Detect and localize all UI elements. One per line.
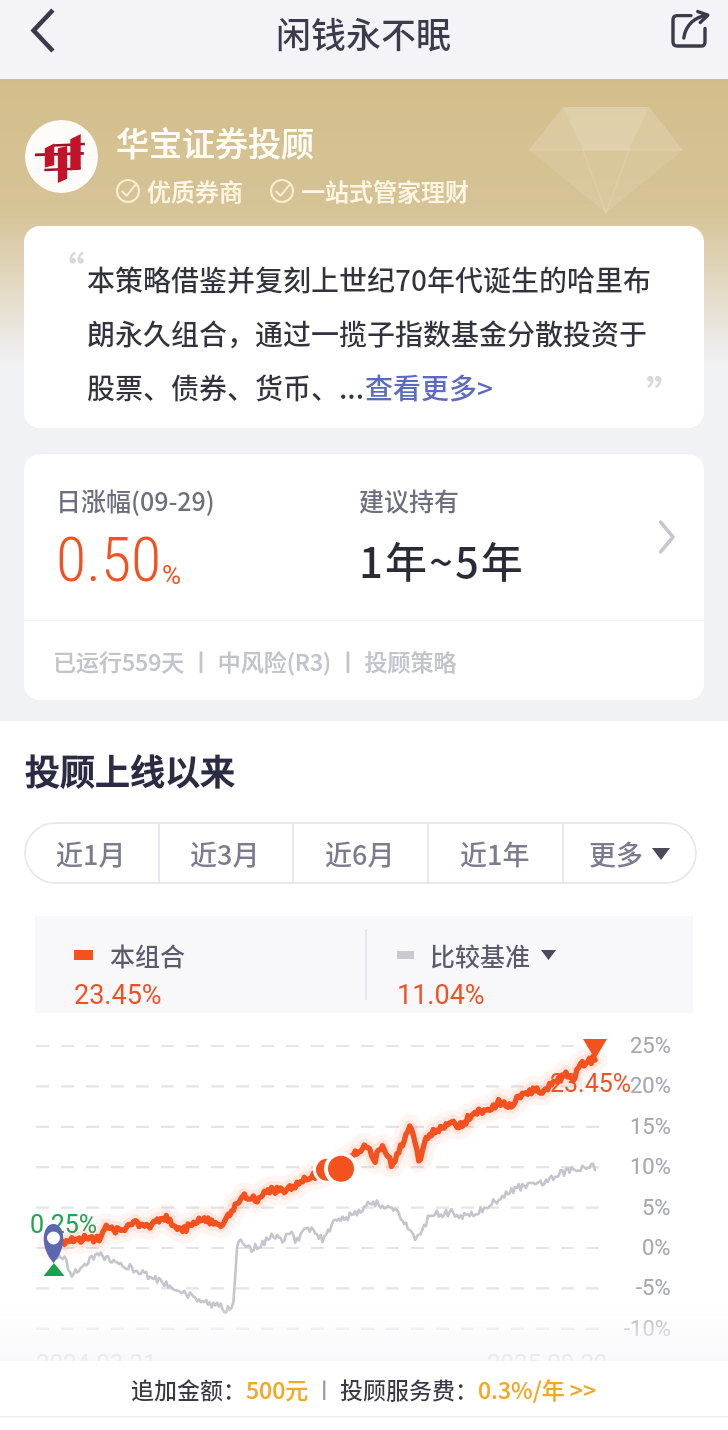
staticText: 闲钱永不眠 — [276, 7, 452, 58]
staticText: 日涨幅(09-29) — [56, 482, 215, 518]
button[interactable]: “ — [24, 226, 704, 428]
staticText: 2024.03.21 — [36, 1349, 157, 1377]
staticText: 比较基准 — [430, 937, 531, 973]
button[interactable]: Back — [14, 1, 72, 59]
button[interactable]: 近1年 — [427, 822, 562, 884]
staticText: 23.45% — [74, 979, 162, 1011]
button[interactable]: 近6月 — [292, 822, 427, 884]
button[interactable]: 日涨幅(09-29) — [24, 454, 704, 700]
staticText: 500元 — [246, 1372, 309, 1405]
staticText: ” — [646, 364, 686, 422]
staticText: 投顾服务费： — [340, 1372, 478, 1405]
staticText: 近6月 — [325, 834, 395, 873]
staticText: 10% — [630, 1154, 671, 1180]
staticText: 15% — [630, 1114, 671, 1140]
staticText: 近3月 — [190, 834, 260, 873]
staticText: % — [162, 560, 182, 590]
staticText: 1年~5年 — [359, 529, 525, 590]
staticText: 11.04% — [397, 979, 485, 1011]
staticText: 已运行559天 丨 中风险(R3) 丨 投顾策略 — [53, 644, 457, 677]
staticText: 5% — [642, 1195, 671, 1221]
staticText: “ — [45, 240, 85, 298]
staticText: 一站式管家理财 — [301, 173, 469, 208]
staticText: 0.50 — [56, 523, 162, 596]
staticText: 0.3%/年 >> — [478, 1372, 597, 1405]
staticText: 20% — [630, 1073, 671, 1099]
staticText: 0% — [642, 1235, 671, 1261]
staticText: 朗永久组合，通过一揽子指数基金分散投资于 — [87, 313, 648, 354]
staticText: 近1月 — [56, 834, 126, 873]
staticText: -5% — [636, 1275, 671, 1301]
staticText: 0.25% — [30, 1210, 98, 1239]
staticText: 投顾上线以来 — [25, 744, 236, 795]
button[interactable]: 查看更多> — [365, 367, 493, 408]
button[interactable]: Share — [660, 1, 718, 59]
staticText: 25% — [630, 1033, 671, 1059]
staticText: 优质券商 — [147, 173, 243, 208]
staticText: 丨 — [309, 1374, 340, 1404]
staticText: 追加金额： — [131, 1372, 246, 1405]
staticText: 本策略借鉴并复刻上世纪70年代诞生的哈里布 — [87, 259, 651, 300]
button[interactable]: 近3月 — [158, 822, 292, 884]
staticText: 2025.09.29 — [487, 1349, 608, 1377]
staticText: 建议持有 — [359, 482, 460, 518]
button[interactable]: 更多 — [562, 822, 697, 884]
button[interactable]: 追加金额： — [0, 1361, 728, 1416]
staticText: 23.45% — [550, 1069, 632, 1098]
staticText: 更多 — [589, 834, 643, 873]
button[interactable]: 近1月 — [24, 822, 158, 884]
staticText: 股票、债券、货币、... — [87, 367, 365, 408]
staticText: 近1年 — [460, 834, 530, 873]
staticText: -10% — [624, 1316, 671, 1342]
staticText: 本组合 — [110, 937, 186, 973]
staticText: 华宝证券投顾 — [116, 118, 314, 166]
